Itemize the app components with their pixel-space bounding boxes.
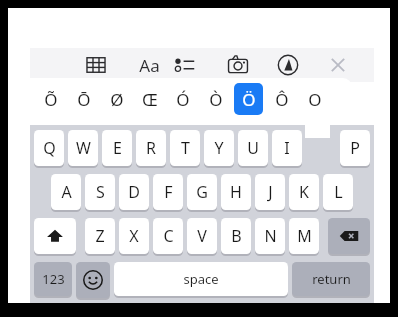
- staticText: F: [164, 181, 173, 203]
- button[interactable]: P: [340, 130, 370, 168]
- staticText: Ô: [275, 88, 289, 111]
- staticText: Ø: [110, 88, 124, 111]
- button[interactable]: V: [187, 218, 217, 256]
- button[interactable]: 123: [34, 262, 72, 298]
- staticText: W: [76, 137, 91, 159]
- button[interactable]: A: [51, 174, 81, 212]
- button[interactable]: B: [221, 218, 251, 256]
- button[interactable]: Backspace: [328, 218, 370, 256]
- button[interactable]: H: [221, 174, 251, 212]
- staticText: return: [312, 270, 351, 288]
- button[interactable]: Text format: [127, 50, 157, 80]
- button[interactable]: Ō: [69, 83, 98, 115]
- staticText: M: [297, 225, 312, 247]
- button[interactable]: Œ: [135, 83, 164, 115]
- staticText: R: [146, 137, 156, 159]
- button[interactable]: return: [292, 262, 370, 298]
- staticText: Ò: [209, 88, 223, 111]
- staticText: Y: [214, 137, 224, 159]
- staticText: A: [61, 181, 72, 203]
- staticText: Õ: [44, 88, 58, 111]
- button[interactable]: F: [153, 174, 183, 212]
- button[interactable]: Z: [85, 218, 115, 256]
- staticText: S: [96, 181, 105, 203]
- staticText: Ó: [176, 88, 190, 111]
- staticText: Z: [95, 225, 105, 247]
- button[interactable]: Shift: [34, 218, 76, 256]
- button[interactable]: Ø: [102, 83, 131, 115]
- button[interactable]: K: [289, 174, 319, 212]
- button[interactable]: E: [102, 130, 132, 168]
- button[interactable]: Y: [204, 130, 234, 168]
- staticText: 123: [42, 270, 65, 288]
- button[interactable]: I: [272, 130, 302, 168]
- staticText: E: [113, 137, 122, 159]
- staticText: G: [196, 181, 208, 203]
- button[interactable]: Text format: [134, 50, 164, 80]
- button[interactable]: Emoji: [76, 262, 110, 300]
- button[interactable]: Ô: [267, 83, 296, 115]
- button[interactable]: Markup: [273, 50, 303, 80]
- button[interactable]: Ö: [234, 83, 263, 115]
- button[interactable]: T: [170, 130, 200, 168]
- button[interactable]: G: [187, 174, 217, 212]
- staticText: Q: [43, 137, 56, 159]
- button[interactable]: Close: [323, 50, 353, 80]
- staticText: Œ: [142, 88, 158, 111]
- button[interactable]: L: [323, 174, 353, 212]
- staticText: H: [230, 181, 242, 203]
- button[interactable]: Table: [81, 50, 111, 80]
- button[interactable]: O: [300, 83, 329, 115]
- button[interactable]: Õ: [36, 83, 65, 115]
- button[interactable]: J: [255, 174, 285, 212]
- button[interactable]: W: [68, 130, 98, 168]
- staticText: U: [247, 137, 259, 159]
- staticText: I: [284, 137, 290, 159]
- button[interactable]: M: [289, 218, 319, 256]
- staticText: space: [183, 270, 219, 288]
- button[interactable]: Ó: [168, 83, 197, 115]
- staticText: Ö: [242, 88, 256, 111]
- staticText: D: [128, 181, 140, 203]
- staticText: Aa: [139, 54, 160, 77]
- button[interactable]: Ò: [201, 83, 230, 115]
- button[interactable]: U: [238, 130, 268, 168]
- button[interactable]: C: [153, 218, 183, 256]
- button[interactable]: X: [119, 218, 149, 256]
- staticText: N: [264, 225, 277, 247]
- staticText: B: [231, 225, 242, 247]
- staticText: Ō: [77, 88, 91, 111]
- staticText: J: [268, 181, 273, 203]
- button[interactable]: D: [119, 174, 149, 212]
- staticText: P: [350, 137, 360, 159]
- staticText: X: [129, 225, 139, 247]
- staticText: L: [334, 181, 343, 203]
- button[interactable]: space: [114, 262, 288, 298]
- staticText: V: [197, 225, 207, 247]
- staticText: T: [181, 137, 190, 159]
- button[interactable]: Q: [34, 130, 64, 168]
- button[interactable]: Camera: [223, 50, 253, 80]
- staticText: K: [299, 181, 309, 203]
- button[interactable]: S: [85, 174, 115, 212]
- staticText: O: [308, 88, 322, 111]
- button[interactable]: N: [255, 218, 285, 256]
- button[interactable]: Checklist: [170, 50, 200, 80]
- button[interactable]: R: [136, 130, 166, 168]
- staticText: C: [163, 225, 174, 247]
